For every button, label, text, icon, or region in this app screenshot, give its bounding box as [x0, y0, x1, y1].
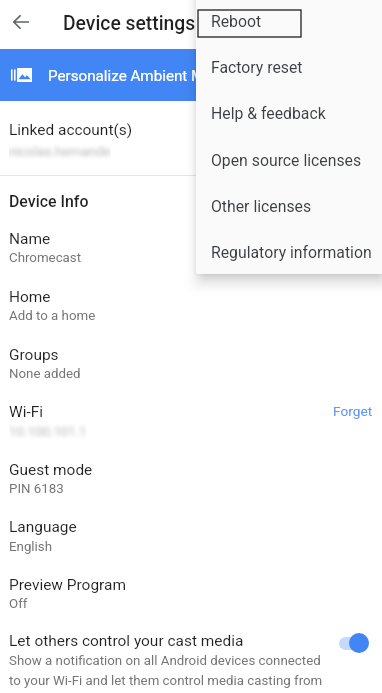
staticText: Reboot — [211, 12, 262, 31]
staticText: Personalize Ambient Mode — [48, 67, 230, 85]
button[interactable]: Help & feedback — [196, 90, 382, 136]
button[interactable]: Linked account(s) — [0, 116, 382, 144]
staticText: Wi-Fi — [9, 403, 44, 421]
button[interactable]: Preview Program — [0, 571, 382, 599]
staticText: Forget — [333, 403, 373, 419]
button[interactable]: Regulatory information — [196, 229, 382, 275]
button[interactable]: Groups — [0, 341, 382, 369]
staticText: nicolas.hernande — [9, 144, 111, 160]
staticText: 10.100.101.1 — [9, 424, 87, 440]
staticText: Linked account(s) — [9, 121, 133, 139]
button[interactable]: Open source licenses — [196, 137, 382, 183]
staticText: Name — [9, 230, 51, 248]
staticText: Guest mode — [9, 461, 93, 479]
staticText: Other licenses — [211, 197, 312, 216]
button[interactable]: Let others control your cast media — [0, 627, 382, 659]
staticText: Preview Program — [9, 576, 126, 594]
staticText: to your Wi-Fi and let them control media… — [9, 673, 323, 689]
staticText: Let others control your cast media — [9, 632, 244, 650]
staticText: Show a notification on all Android devic… — [9, 653, 321, 669]
staticText: Factory reset — [211, 58, 303, 77]
button[interactable]: Reboot — [196, 0, 382, 44]
staticText: Add to a home — [9, 308, 96, 324]
staticText: Home — [9, 288, 51, 306]
staticText: English — [9, 539, 53, 555]
staticText: Regulatory information — [211, 243, 372, 262]
button[interactable]: Language — [0, 513, 382, 541]
staticText: Device Info — [9, 192, 89, 211]
staticText: None added — [9, 366, 81, 382]
staticText: Open source licenses — [211, 151, 362, 170]
staticText: PIN 6183 — [9, 481, 64, 497]
staticText: Device settings — [63, 12, 196, 35]
button[interactable]: Back — [13, 15, 29, 29]
button[interactable]: Factory reset — [196, 44, 382, 90]
staticText: Off — [9, 596, 28, 612]
button[interactable]: Other licenses — [196, 183, 382, 229]
button[interactable]: Wi-Fi — [0, 398, 382, 426]
button[interactable]: Name — [0, 225, 382, 253]
staticText: Help & feedback — [211, 104, 326, 123]
button[interactable]: Personalize Ambient Mode — [0, 49, 382, 101]
staticText: Language — [9, 518, 77, 536]
button[interactable]: Guest mode — [0, 456, 382, 484]
button[interactable]: Home — [0, 283, 382, 311]
staticText: Chromecast — [9, 250, 82, 266]
staticText: Groups — [9, 346, 59, 364]
